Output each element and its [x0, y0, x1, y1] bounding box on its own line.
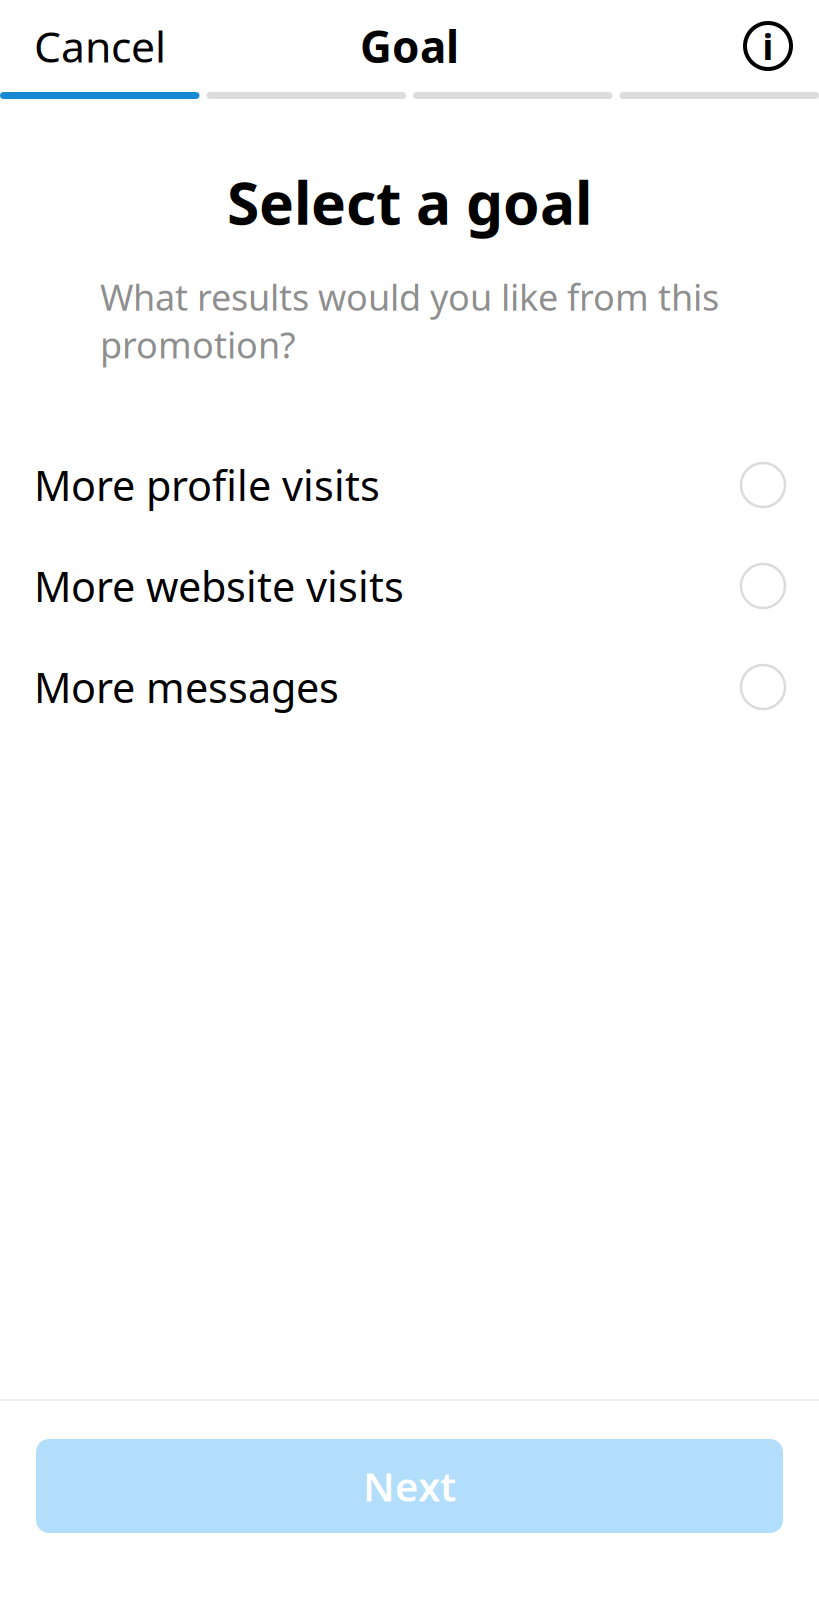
staticText: More profile visits — [34, 458, 380, 512]
staticText: Cancel — [34, 18, 166, 74]
staticText: Select a goal — [227, 163, 592, 241]
staticText: More website visits — [34, 559, 404, 613]
button[interactable]: More information — [717, 0, 819, 92]
button[interactable]: More website visits — [0, 535, 819, 636]
button[interactable]: More messages — [0, 636, 819, 737]
staticText: i — [762, 22, 773, 70]
button[interactable]: More profile visits — [0, 434, 819, 535]
staticText: Goal — [360, 17, 459, 75]
button[interactable]: Cancel — [0, 0, 200, 92]
staticText: More messages — [34, 660, 339, 714]
staticText: Next — [363, 1459, 456, 1512]
button[interactable]: Next — [36, 1439, 783, 1533]
staticText: What results would you like from this pr… — [100, 273, 719, 368]
